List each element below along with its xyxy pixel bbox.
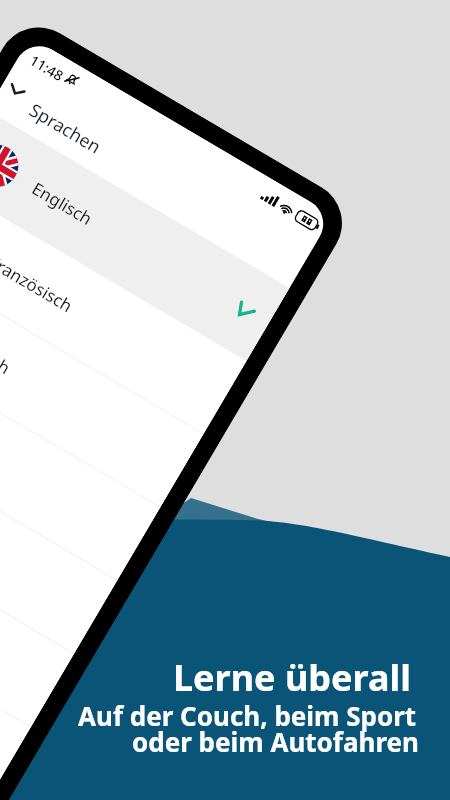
staticText: Lerne überall	[173, 653, 411, 702]
button[interactable]: Englisch	[0, 110, 290, 361]
staticText: 11:48	[26, 50, 67, 85]
staticText: Englisch	[28, 177, 96, 230]
button[interactable]: Zurück	[0, 69, 37, 110]
staticText: Auf der Couch, beim Sport	[78, 698, 417, 733]
button[interactable]: Spanisch	[0, 256, 203, 508]
staticText: Sprachen	[25, 98, 106, 160]
staticText: oder beim Autofahren	[132, 724, 419, 759]
button[interactable]: Japanisch	[0, 549, 31, 800]
staticText: Spanisch	[0, 323, 15, 380]
staticText: Französisch	[0, 250, 77, 317]
button[interactable]: Russisch	[0, 476, 74, 727]
button[interactable]: Italienisch	[0, 330, 160, 581]
button[interactable]: Französisch	[0, 183, 247, 434]
button[interactable]: Portugiesisch	[0, 403, 117, 654]
